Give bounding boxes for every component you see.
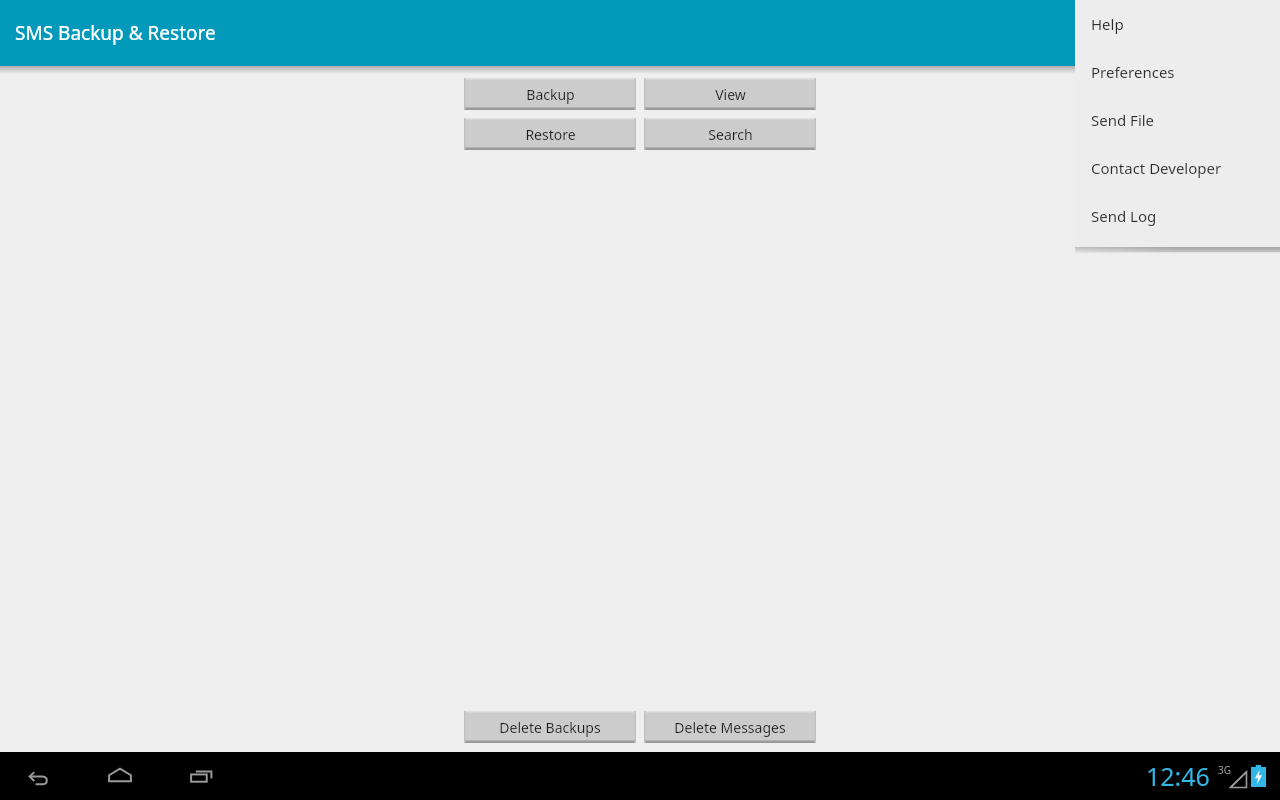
button[interactable]: Send Log (1075, 192, 1280, 240)
staticText: SMS Backup & Restore (15, 20, 216, 46)
button[interactable]: Send File (1075, 96, 1280, 144)
staticText: View (715, 85, 746, 104)
staticText: Send File (1091, 110, 1155, 130)
button[interactable]: View (644, 78, 816, 110)
button[interactable]: Restore (464, 118, 636, 150)
staticText: Contact Developer (1091, 158, 1222, 178)
button[interactable]: Help (1075, 0, 1280, 48)
button[interactable]: Preferences (1075, 48, 1280, 96)
staticText: Preferences (1091, 62, 1175, 82)
button[interactable]: Contact Developer (1075, 144, 1280, 192)
staticText: 3G (1218, 763, 1231, 777)
staticText: Search (708, 125, 753, 144)
button[interactable]: Search (644, 118, 816, 150)
button[interactable]: Backup (464, 78, 636, 110)
staticText: Restore (525, 125, 576, 144)
staticText: Backup (526, 85, 575, 104)
button[interactable]: Delete Messages (644, 711, 816, 743)
staticText: Send Log (1091, 206, 1157, 226)
button[interactable]: Back (16, 752, 64, 800)
button[interactable]: Home (96, 752, 144, 800)
staticText: Delete Backups (499, 718, 601, 737)
staticText: 12:46 (1146, 759, 1210, 793)
button[interactable]: Recent apps (177, 752, 225, 800)
staticText: Delete Messages (674, 718, 786, 737)
staticText: Help (1091, 14, 1124, 34)
button[interactable]: Delete Backups (464, 711, 636, 743)
